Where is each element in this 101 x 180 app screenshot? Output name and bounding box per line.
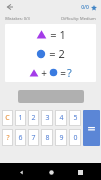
staticText: 7 xyxy=(31,133,36,143)
staticText: = 1 xyxy=(50,27,66,42)
staticText: ? xyxy=(67,65,72,80)
button[interactable]: 7 xyxy=(28,129,39,146)
button[interactable]: Recent apps xyxy=(72,164,88,180)
staticText: 3 xyxy=(45,113,50,123)
staticText: = xyxy=(60,66,66,80)
button[interactable]: Equals, submit answer xyxy=(83,110,100,146)
staticText: Difficulty: Medium xyxy=(61,16,96,21)
staticText: 9 xyxy=(59,133,64,143)
button[interactable]: 1 xyxy=(15,110,26,126)
button[interactable]: 0 xyxy=(69,129,81,146)
button[interactable]: 8 xyxy=(41,129,53,146)
button[interactable]: C xyxy=(2,110,13,126)
staticText: 8 xyxy=(45,133,50,143)
staticText: = 2 xyxy=(49,46,65,61)
staticText: 1 xyxy=(18,113,23,123)
button[interactable]: 3 xyxy=(41,110,53,126)
button[interactable]: 5 xyxy=(69,110,81,126)
staticText: 5 xyxy=(73,113,78,123)
button[interactable]: 9 xyxy=(55,129,67,146)
staticText: ? xyxy=(6,133,10,143)
button[interactable]: Back xyxy=(13,164,29,180)
staticText: C xyxy=(5,113,10,123)
staticText: 0 xyxy=(73,133,78,143)
staticText: 4 xyxy=(59,113,64,123)
button[interactable]: 4 xyxy=(55,110,67,126)
staticText: 2 xyxy=(31,113,36,123)
button[interactable]: 2 xyxy=(28,110,39,126)
button[interactable]: 6 xyxy=(15,129,26,146)
staticText: Mistakes: 0/3 xyxy=(5,16,30,21)
staticText: 6 xyxy=(18,133,23,143)
button[interactable]: Back xyxy=(4,1,16,13)
button[interactable]: Home xyxy=(43,164,59,180)
button[interactable]: 0/0 xyxy=(81,4,97,11)
staticText: + xyxy=(41,66,47,80)
button[interactable]: ? xyxy=(2,129,13,146)
staticText: 0/0 xyxy=(81,4,89,11)
